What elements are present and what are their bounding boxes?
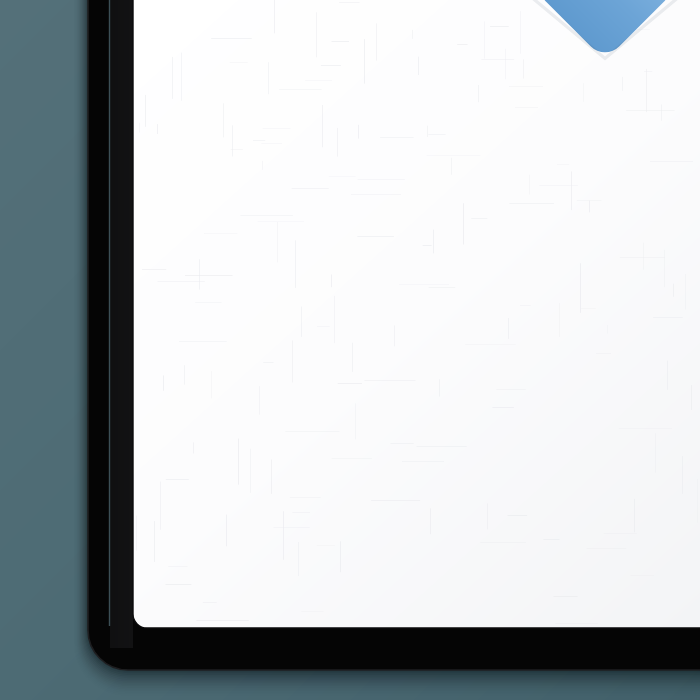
button[interactable]: Phone mockup close-up [0, 0, 700, 700]
